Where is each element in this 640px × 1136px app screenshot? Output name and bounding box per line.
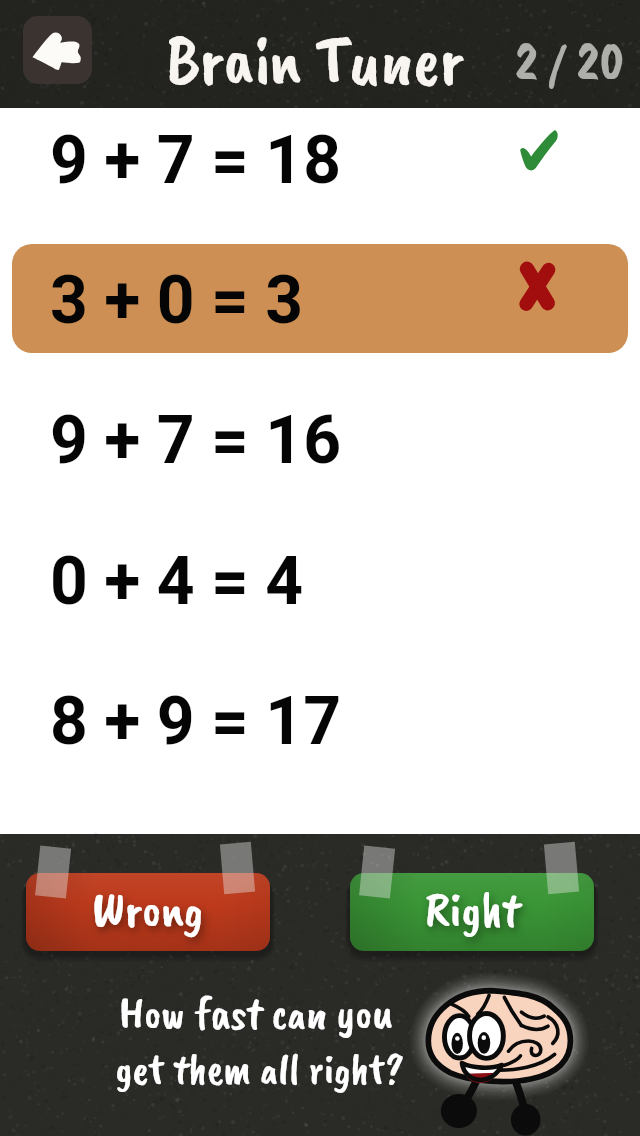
button[interactable]: 8 + 9 = 17 (12, 665, 628, 774)
button[interactable]: Right (350, 873, 594, 951)
staticText: 9 + 7 = 18 (50, 122, 342, 199)
button[interactable]: 3 + 0 = 3 (12, 244, 628, 353)
staticText: 2 / 20 (515, 26, 625, 95)
staticText: Wrong (92, 878, 204, 941)
button[interactable]: 9 + 7 = 16 (12, 384, 628, 493)
staticText: Brain Tuner (166, 16, 464, 104)
button[interactable]: 9 + 7 = 18 (12, 108, 628, 213)
button[interactable]: 0 + 4 = 4 (12, 525, 628, 634)
button[interactable]: Wrong (26, 873, 270, 951)
button[interactable]: Back (23, 16, 92, 84)
staticText: Right (425, 878, 520, 941)
staticText: 0 + 4 = 4 (50, 543, 304, 620)
staticText: get them all right? (115, 1042, 404, 1096)
staticText: 8 + 9 = 17 (50, 683, 342, 760)
staticText: How fast can you (119, 985, 394, 1042)
staticText: 3 + 0 = 3 (50, 262, 304, 339)
staticText: 9 + 7 = 16 (50, 402, 342, 479)
